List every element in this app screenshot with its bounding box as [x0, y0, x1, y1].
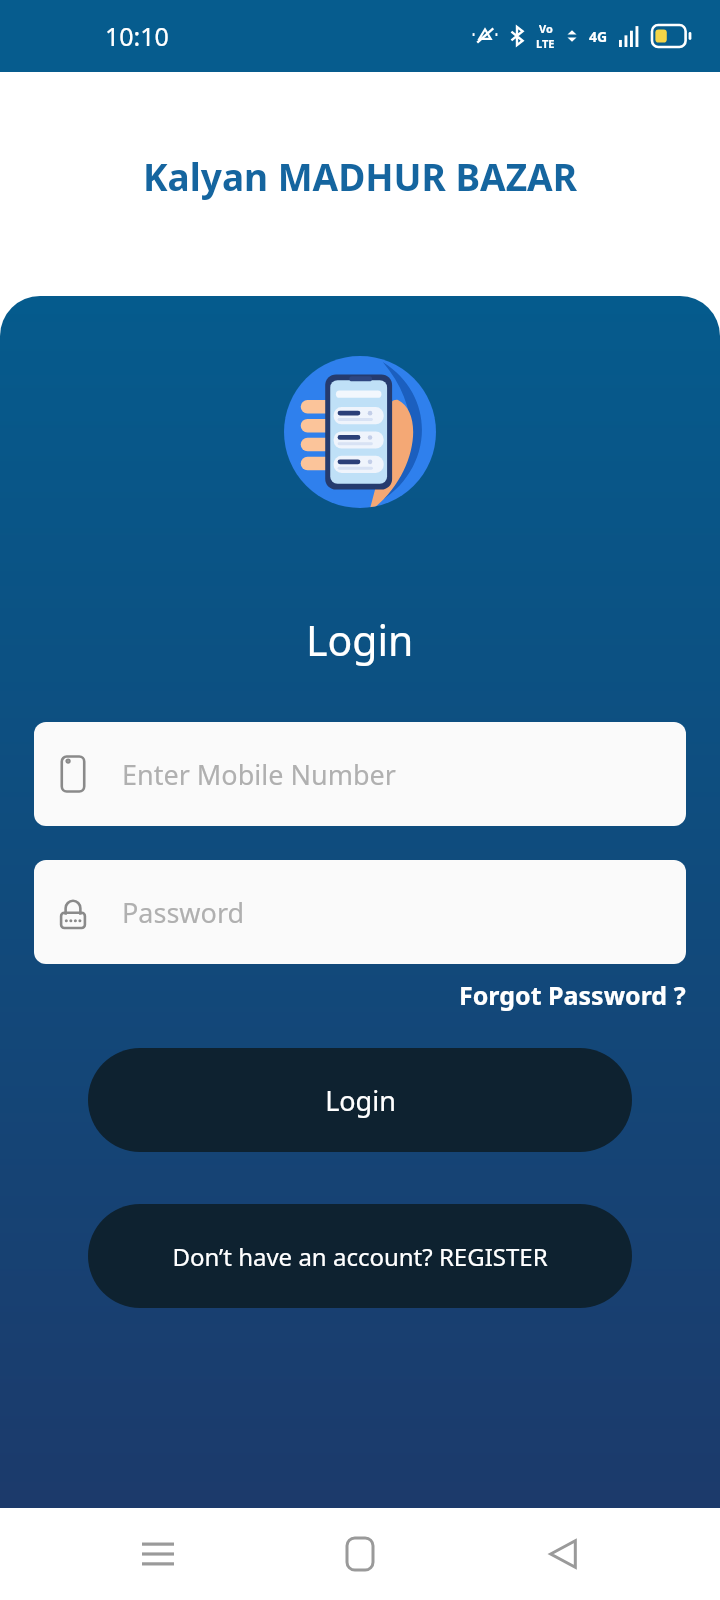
button[interactable]: Enter Mobile Number — [34, 722, 686, 826]
button[interactable]: Recent apps — [113, 1509, 203, 1599]
staticText: Forgot Password ? — [459, 978, 686, 1012]
staticText: Kalyan MADHUR BAZAR — [143, 151, 577, 201]
button[interactable]: Don’t have an account? REGISTER — [88, 1204, 632, 1308]
staticText: 4G — [589, 27, 608, 46]
staticText: 10:10 — [105, 19, 169, 53]
button[interactable]: Home — [315, 1509, 405, 1599]
staticText: Don’t have an account? REGISTER — [172, 1240, 548, 1273]
staticText: Password — [122, 894, 245, 931]
button[interactable]: Forgot Password ? — [0, 978, 686, 1012]
staticText: Vo — [539, 21, 553, 36]
staticText: Login — [325, 1082, 396, 1119]
button[interactable]: Back — [518, 1509, 608, 1599]
staticText: Login — [306, 612, 414, 668]
staticText: Enter Mobile Number — [122, 756, 396, 793]
staticText: LTE — [536, 36, 555, 51]
button[interactable]: Login — [88, 1048, 632, 1152]
button[interactable]: Password — [34, 860, 686, 964]
